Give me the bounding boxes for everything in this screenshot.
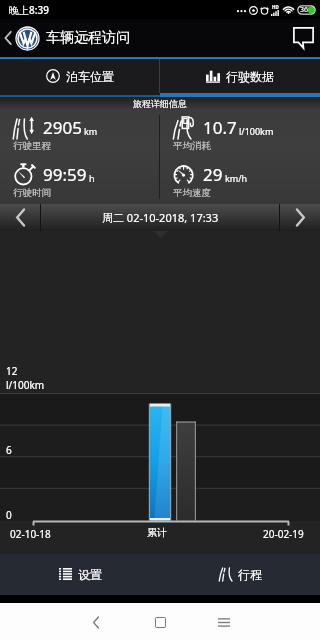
button[interactable]: 行驶数据: [160, 59, 320, 93]
staticText: l/100km: [239, 125, 274, 137]
staticText: l/100km: [6, 378, 45, 392]
staticText: 36: [300, 5, 309, 15]
button[interactable]: 泊车位置: [0, 59, 159, 93]
button[interactable]: Home: [144, 606, 176, 638]
button[interactable]: Previous: [0, 204, 40, 231]
staticText: 6: [6, 443, 12, 457]
button[interactable]: Next: [280, 204, 320, 231]
staticText: 99:59: [43, 163, 87, 186]
staticText: km/h: [225, 172, 248, 184]
staticText: 设置: [78, 567, 102, 582]
staticText: 行程: [238, 567, 262, 582]
staticText: 平均消耗: [173, 140, 211, 152]
staticText: 平均速度: [173, 187, 211, 199]
button[interactable]: 设置: [0, 554, 160, 595]
staticText: HD: [272, 4, 279, 10]
staticText: 车辆远程访问: [46, 29, 130, 47]
button[interactable]: Recents: [208, 606, 240, 638]
staticText: 0: [6, 508, 12, 522]
staticText: 行驶时间: [13, 187, 51, 199]
staticText: 累计: [147, 526, 167, 539]
staticText: 旅程详细信息: [133, 98, 187, 109]
staticText: h: [89, 172, 95, 184]
staticText: 10.7: [203, 116, 237, 139]
staticText: km: [84, 125, 98, 137]
staticText: 行驶里程: [13, 140, 51, 152]
button[interactable]: Back: [80, 606, 112, 638]
staticText: 晚上8:39: [9, 3, 49, 17]
button[interactable]: Back: [0, 19, 16, 57]
button[interactable]: 行程: [160, 554, 320, 595]
button[interactable]: Messages: [290, 23, 316, 53]
staticText: 12: [6, 364, 18, 378]
staticText: 周二 02-10-2018, 17:33: [102, 210, 219, 225]
staticText: 泊车位置: [66, 69, 114, 84]
staticText: 行驶数据: [226, 69, 274, 84]
staticText: 02-10-18: [10, 527, 51, 541]
staticText: 29: [203, 163, 223, 186]
staticText: 20-02-19: [263, 527, 304, 541]
staticText: 2905: [43, 116, 82, 139]
